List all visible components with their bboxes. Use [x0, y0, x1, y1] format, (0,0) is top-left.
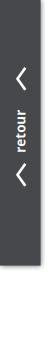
staticText: retour	[0, 118, 37, 136]
